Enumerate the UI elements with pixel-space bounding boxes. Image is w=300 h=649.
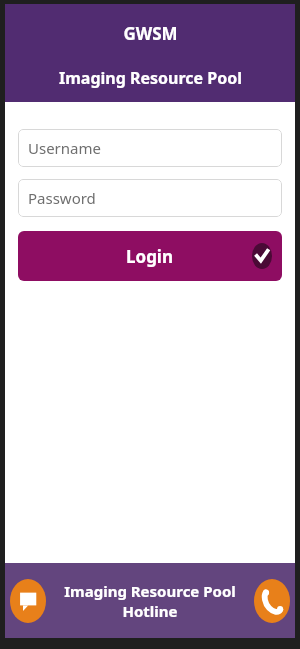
button[interactable]: Send message [10, 579, 46, 623]
staticText: Imaging Resource Pool [59, 67, 242, 89]
staticText: Password [28, 188, 96, 208]
staticText: Imaging Resource Pool Hotline [50, 581, 250, 621]
staticText: Login [126, 245, 174, 268]
button[interactable]: Login [18, 231, 282, 281]
staticText: GWSM [123, 22, 178, 45]
button[interactable]: Password [18, 179, 282, 217]
staticText: Username [28, 138, 101, 158]
button[interactable]: Call hotline [254, 579, 290, 623]
button[interactable]: Username [18, 129, 282, 167]
